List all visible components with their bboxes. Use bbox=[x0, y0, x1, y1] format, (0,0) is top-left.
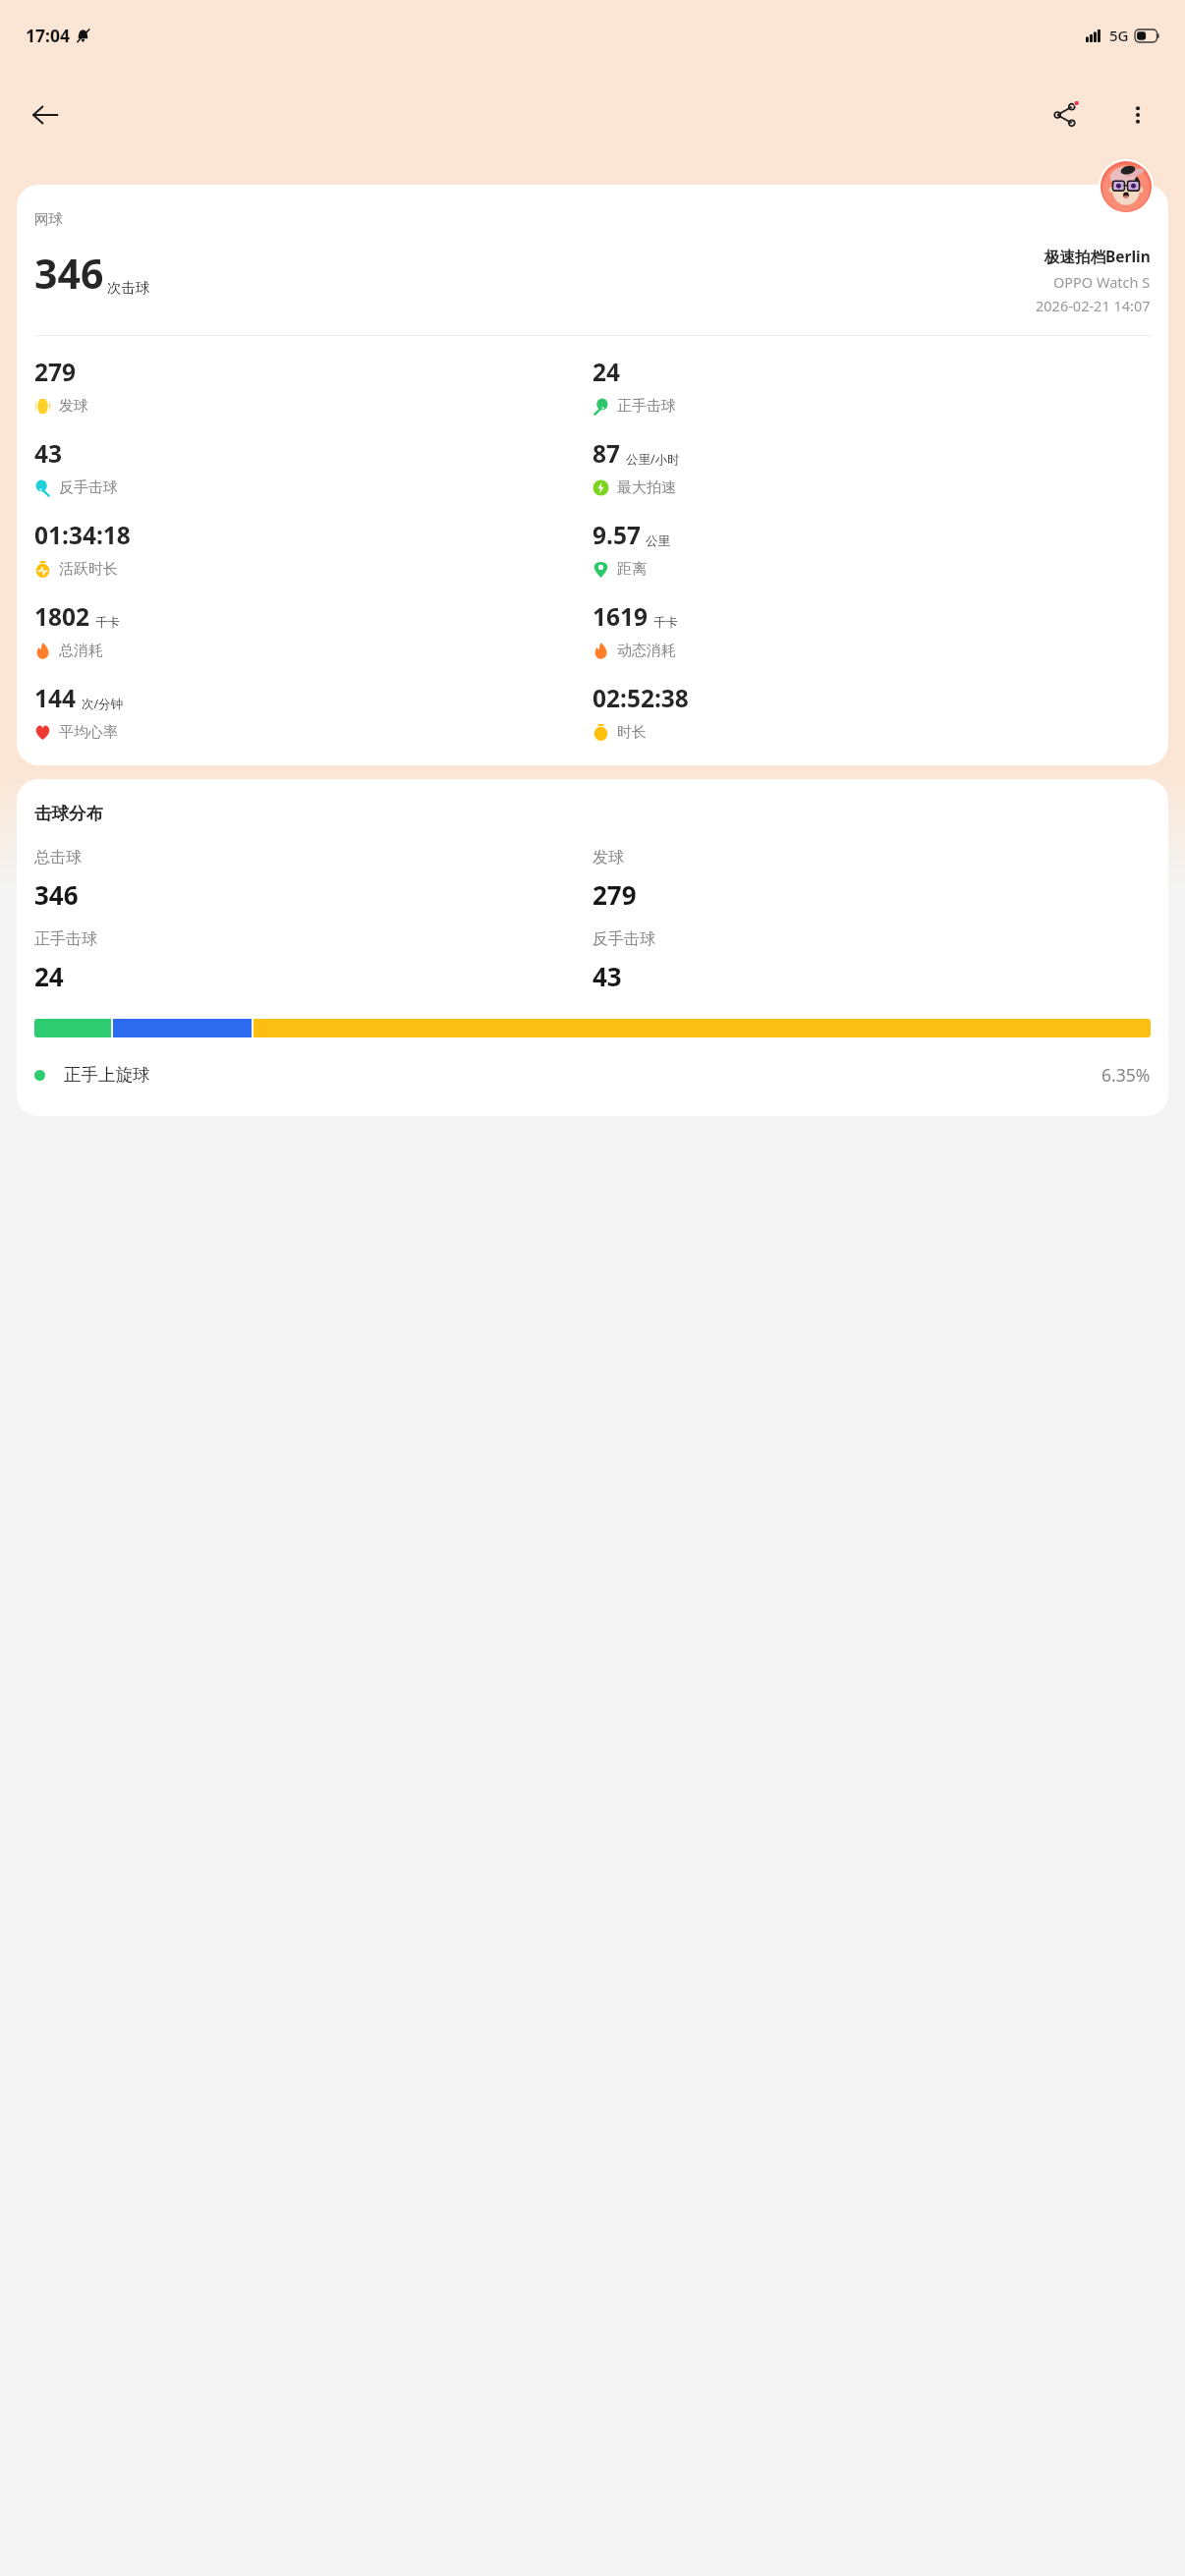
staticText: 17:04 bbox=[26, 24, 70, 47]
staticText: 正手上旋球 bbox=[64, 1064, 150, 1086]
staticText: 24 bbox=[592, 356, 621, 388]
button[interactable]: 1802 bbox=[34, 600, 120, 660]
button[interactable]: 24 bbox=[592, 356, 676, 416]
staticText: 距离 bbox=[617, 560, 647, 579]
button[interactable]: 正手上旋球 bbox=[34, 1063, 1151, 1087]
staticText: 次/分钟 bbox=[82, 696, 124, 712]
staticText: 次击球 bbox=[107, 279, 150, 297]
button[interactable]: 87 bbox=[592, 437, 680, 497]
staticText: 总消耗 bbox=[59, 642, 103, 660]
staticText: 极速拍档Berlin bbox=[1044, 246, 1151, 266]
staticText: 发球 bbox=[592, 848, 624, 868]
staticText: 346 bbox=[34, 877, 79, 912]
button[interactable]: Back bbox=[18, 87, 73, 142]
button[interactable]: Share bbox=[1038, 87, 1093, 142]
staticText: 公里 bbox=[646, 533, 670, 549]
staticText: 总击球 bbox=[34, 848, 82, 868]
staticText: 网球 bbox=[34, 210, 63, 228]
staticText: 02:52:38 bbox=[592, 682, 689, 714]
button[interactable]: 发球 bbox=[592, 848, 1151, 912]
staticText: 千卡 bbox=[653, 615, 678, 631]
button[interactable]: 正手击球 bbox=[34, 929, 592, 993]
button[interactable]: 279 bbox=[34, 356, 88, 416]
button[interactable]: 总击球 bbox=[34, 848, 592, 912]
staticText: 5G bbox=[1109, 26, 1129, 45]
button[interactable]: 144 bbox=[34, 682, 124, 742]
button[interactable]: 02:52:38 bbox=[592, 682, 689, 742]
button[interactable]: 9.57 bbox=[592, 519, 670, 579]
staticText: 43 bbox=[592, 959, 622, 993]
staticText: 346 bbox=[34, 246, 104, 301]
staticText: 144 bbox=[34, 682, 77, 714]
button[interactable]: 43 bbox=[34, 437, 118, 497]
staticText: 2026-02-21 14:07 bbox=[1036, 296, 1151, 315]
button[interactable]: 1619 bbox=[592, 600, 678, 660]
staticText: 正手击球 bbox=[34, 929, 97, 949]
button[interactable]: 击球分布 bbox=[17, 779, 1168, 1116]
staticText: 发球 bbox=[59, 397, 88, 416]
staticText: 279 bbox=[592, 877, 637, 912]
button[interactable]: More options bbox=[1110, 87, 1165, 142]
staticText: 反手击球 bbox=[59, 478, 118, 497]
button[interactable]: 反手击球 bbox=[592, 929, 1151, 993]
staticText: 43 bbox=[34, 437, 63, 470]
staticText: 1619 bbox=[592, 600, 649, 633]
staticText: 时长 bbox=[617, 723, 647, 742]
button[interactable]: 网球 bbox=[17, 185, 1168, 765]
staticText: 活跃时长 bbox=[59, 560, 118, 579]
staticText: 01:34:18 bbox=[34, 519, 131, 551]
staticText: 87 bbox=[592, 437, 621, 470]
staticText: 公里/小时 bbox=[626, 451, 680, 468]
staticText: 24 bbox=[34, 959, 64, 993]
staticText: 千卡 bbox=[95, 615, 120, 631]
staticText: 9.57 bbox=[592, 519, 641, 551]
staticText: 正手击球 bbox=[617, 397, 676, 416]
staticText: 1802 bbox=[34, 600, 90, 633]
staticText: OPPO Watch S bbox=[1053, 272, 1151, 292]
staticText: 动态消耗 bbox=[617, 642, 676, 660]
button[interactable]: User avatar bbox=[1099, 159, 1154, 214]
staticText: 平均心率 bbox=[59, 723, 118, 742]
staticText: 6.35% bbox=[1101, 1063, 1151, 1087]
staticText: 击球分布 bbox=[34, 803, 103, 824]
staticText: 反手击球 bbox=[592, 929, 655, 949]
staticText: 最大拍速 bbox=[617, 478, 676, 497]
button[interactable]: 01:34:18 bbox=[34, 519, 131, 579]
staticText: 279 bbox=[34, 356, 77, 388]
